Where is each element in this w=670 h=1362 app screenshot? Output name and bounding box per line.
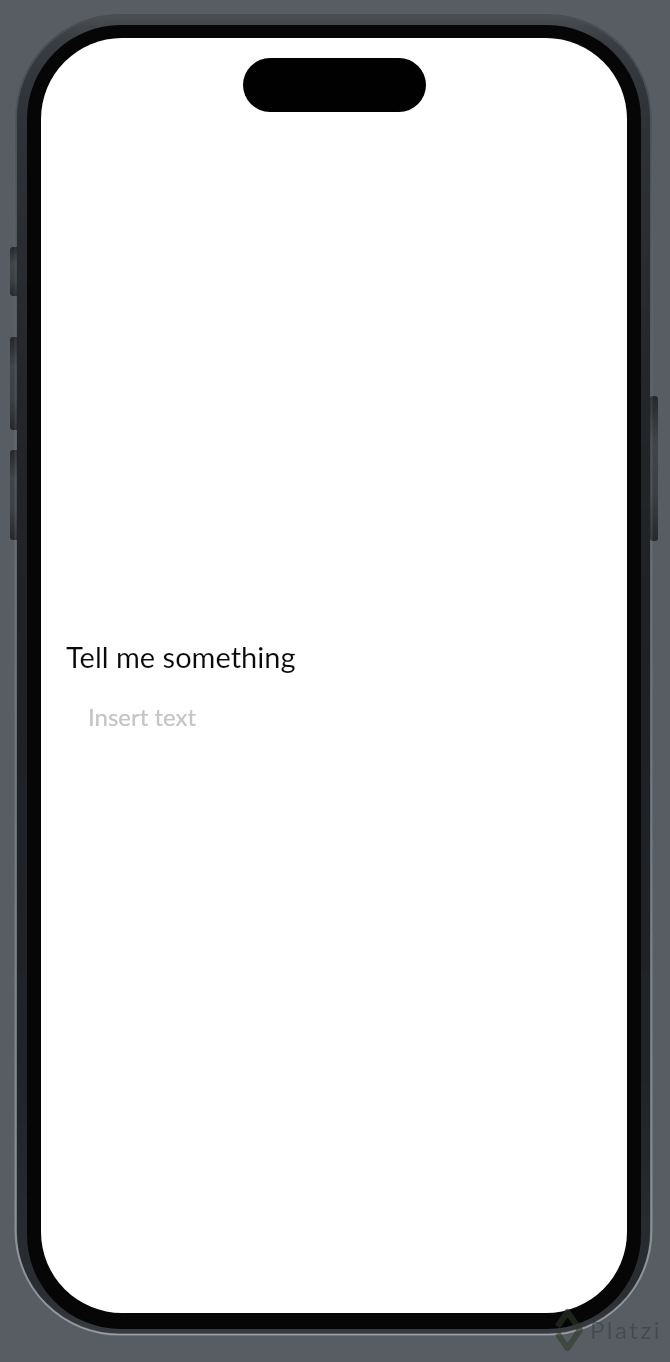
staticText: Tell me something bbox=[66, 639, 296, 674]
staticText: Platzi bbox=[590, 1315, 662, 1344]
staticText: Insert text bbox=[88, 702, 197, 731]
button[interactable]: Insert text bbox=[77, 690, 397, 740]
